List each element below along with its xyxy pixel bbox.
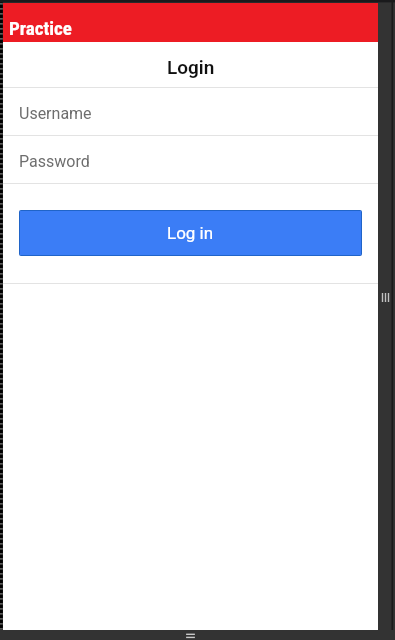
button[interactable]: Username <box>3 88 378 135</box>
staticText: Login <box>167 56 215 78</box>
button[interactable]: Resize panel <box>378 283 392 311</box>
staticText: Log in <box>167 223 214 243</box>
button[interactable]: Show more <box>0 630 395 640</box>
button[interactable]: Password <box>3 136 378 183</box>
staticText: Username <box>19 104 92 123</box>
staticText: Practice <box>9 17 72 39</box>
staticText: Password <box>19 152 90 171</box>
button[interactable]: Log in <box>20 211 361 255</box>
button[interactable]: Practice <box>3 3 378 42</box>
